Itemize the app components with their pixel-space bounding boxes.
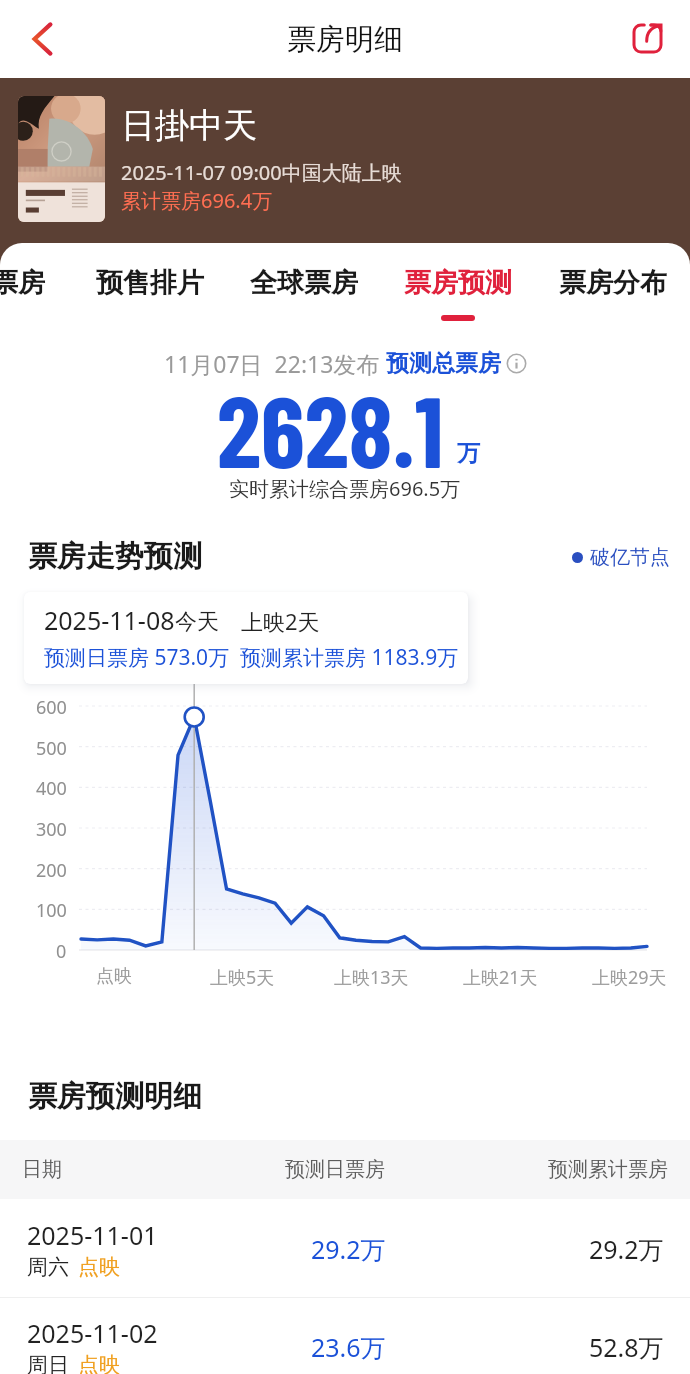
staticText: 日期	[22, 1157, 62, 1182]
staticText: 52.8万	[589, 1330, 664, 1364]
staticText: 票房走势预测	[28, 538, 202, 575]
staticText: 预测日票房 573.0万 预测累计票房 1183.9万	[44, 643, 459, 672]
staticText: 票房分布	[559, 266, 667, 300]
staticText: 300	[36, 817, 67, 842]
staticText: 100	[36, 898, 67, 923]
staticText: 600	[36, 695, 67, 720]
staticText: 万	[457, 439, 480, 468]
staticText: 2628.1	[217, 368, 444, 488]
staticText: 上映5天	[210, 965, 275, 990]
button[interactable]: 预测总票房	[386, 349, 527, 378]
staticText: 11月07日 22:13发布	[164, 348, 386, 379]
staticText: 上映2天	[241, 606, 320, 636]
button[interactable]: 全球票房	[227, 246, 381, 321]
staticText: 29.2万	[311, 1232, 386, 1266]
staticText: 今天	[175, 608, 219, 636]
button[interactable]: 破亿节点	[572, 545, 670, 570]
button[interactable]: 2025-11-02	[0, 1298, 690, 1374]
button[interactable]: 票房预测	[381, 246, 535, 321]
staticText: 预售排片	[96, 266, 204, 300]
staticText: 票房预测	[404, 266, 512, 300]
staticText: 2025-11-01	[27, 1218, 158, 1252]
staticText: 票房明细	[287, 21, 403, 58]
staticText: 预测总票房	[386, 349, 501, 378]
staticText: 2025-11-02	[27, 1316, 158, 1350]
staticText: 400	[36, 776, 67, 801]
button[interactable]: 2025-11-01	[0, 1200, 690, 1298]
staticText: 预测累计票房	[548, 1157, 668, 1182]
staticText: 200	[36, 858, 67, 883]
staticText: 点映	[96, 965, 132, 988]
staticText: 票房预测明细	[28, 1078, 202, 1115]
staticText: 周六	[27, 1254, 69, 1280]
button[interactable]: 票房	[0, 246, 95, 321]
staticText: 500	[36, 736, 67, 761]
staticText: 日掛中天	[121, 104, 257, 147]
staticText: 点映	[78, 1352, 120, 1374]
staticText: 2025-11-08	[44, 603, 175, 637]
staticText: 实时累计综合票房696.5万	[229, 475, 461, 502]
staticText: 预测日票房	[285, 1157, 385, 1182]
staticText: 23.6万	[311, 1330, 386, 1364]
staticText: 0	[56, 939, 67, 964]
other: 预测总票房说明	[506, 353, 527, 374]
staticText: 全球票房	[250, 266, 358, 300]
staticText: 周日	[27, 1352, 69, 1374]
button[interactable]: Back	[12, 15, 60, 63]
staticText: 破亿节点	[590, 545, 670, 570]
staticText: 2025-11-07 09:00中国大陆上映	[121, 159, 402, 186]
button[interactable]: 票房分布	[536, 246, 690, 321]
staticText: 上映13天	[334, 965, 409, 990]
staticText: 点映	[78, 1254, 120, 1280]
staticText: 上映29天	[592, 965, 667, 990]
button[interactable]: 预售排片	[73, 246, 227, 321]
staticText: 29.2万	[589, 1232, 664, 1266]
staticText: 累计票房696.4万	[121, 187, 273, 214]
button[interactable]: Share	[630, 19, 670, 59]
staticText: 上映21天	[463, 965, 538, 990]
staticText: 票房	[0, 266, 45, 300]
